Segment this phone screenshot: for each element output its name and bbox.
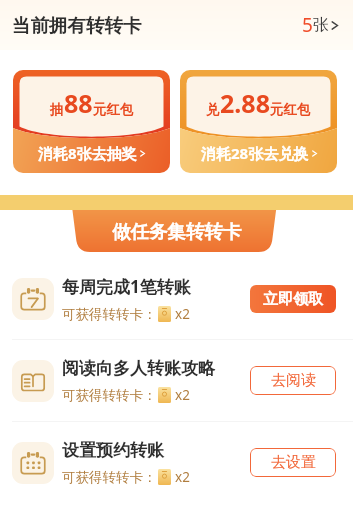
button[interactable]: 抽 bbox=[13, 70, 170, 173]
staticText: x2 bbox=[175, 468, 190, 486]
staticText: 元红包 bbox=[93, 101, 134, 118]
staticText: 88 bbox=[64, 86, 93, 120]
button[interactable]: 立即领取 bbox=[250, 285, 336, 313]
staticText: 做任务集转转卡 bbox=[112, 220, 242, 243]
staticText: 消耗28张去兑换 bbox=[201, 143, 309, 163]
staticText: 阅读向多人转账攻略 bbox=[62, 358, 215, 379]
staticText: 兑 bbox=[206, 101, 220, 118]
staticText: 元红包 bbox=[270, 101, 311, 118]
staticText: 抽 bbox=[50, 101, 64, 118]
staticText: 设置预约转账 bbox=[62, 440, 164, 461]
staticText: 当前拥有转转卡 bbox=[12, 14, 142, 37]
staticText: 可获得转转卡： bbox=[62, 306, 157, 323]
staticText: 去设置 bbox=[271, 453, 316, 472]
staticText: 5 bbox=[302, 12, 313, 38]
button[interactable]: 去阅读 bbox=[250, 366, 336, 395]
staticText: 可获得转转卡： bbox=[62, 469, 157, 486]
staticText: 消耗8张去抽奖 bbox=[38, 143, 137, 163]
button[interactable]: 5 bbox=[298, 8, 343, 42]
button[interactable]: 兑 bbox=[180, 70, 337, 173]
staticText: 张 bbox=[313, 15, 329, 35]
staticText: 2.88 bbox=[220, 86, 270, 120]
staticText: 去阅读 bbox=[271, 371, 316, 390]
staticText: 每周完成1笔转账 bbox=[62, 275, 191, 298]
button[interactable]: 去设置 bbox=[250, 448, 336, 477]
staticText: 可获得转转卡： bbox=[62, 387, 157, 404]
staticText: x2 bbox=[175, 305, 190, 323]
staticText: 立即领取 bbox=[263, 290, 323, 309]
staticText: x2 bbox=[175, 386, 190, 404]
